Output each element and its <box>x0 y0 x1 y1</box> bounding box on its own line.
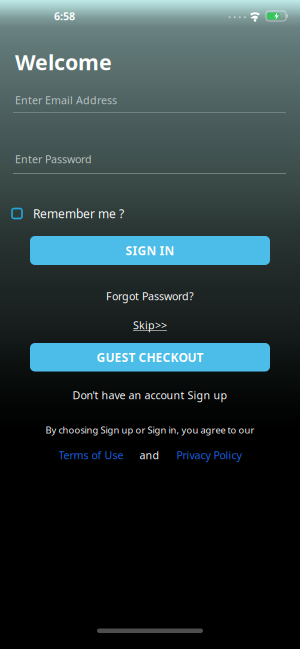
button[interactable]: Don't have an account Sign up <box>72 388 227 402</box>
staticText: Forgot Password? <box>106 289 194 303</box>
staticText: Enter Email Address <box>15 93 117 107</box>
staticText: Terms of Use <box>58 448 123 462</box>
button[interactable]: GUEST CHECKOUT <box>30 343 270 371</box>
staticText: SIGN IN <box>125 242 174 258</box>
staticText: Skip>> <box>133 318 167 332</box>
button[interactable]: Forgot Password? <box>106 289 194 303</box>
staticText: By choosing Sign up or Sign in, you agre… <box>45 424 254 436</box>
staticText: Don't have an account Sign up <box>72 388 227 402</box>
staticText: 6:58 <box>54 9 75 23</box>
button[interactable]: Skip>> <box>133 318 167 332</box>
staticText: and <box>139 448 159 462</box>
button[interactable]: SIGN IN <box>30 236 270 265</box>
button[interactable]: Terms of Use <box>58 448 123 462</box>
button[interactable]: Privacy Policy <box>176 448 241 462</box>
button[interactable]: Enter Password <box>0 152 300 174</box>
staticText: GUEST CHECKOUT <box>96 349 203 365</box>
staticText: Privacy Policy <box>176 448 241 462</box>
button[interactable]: Remember me ? <box>0 206 300 220</box>
staticText: Welcome <box>15 48 112 76</box>
button[interactable]: Enter Email Address <box>0 93 300 113</box>
staticText: Enter Password <box>15 152 92 166</box>
staticText: Remember me ? <box>33 205 124 221</box>
